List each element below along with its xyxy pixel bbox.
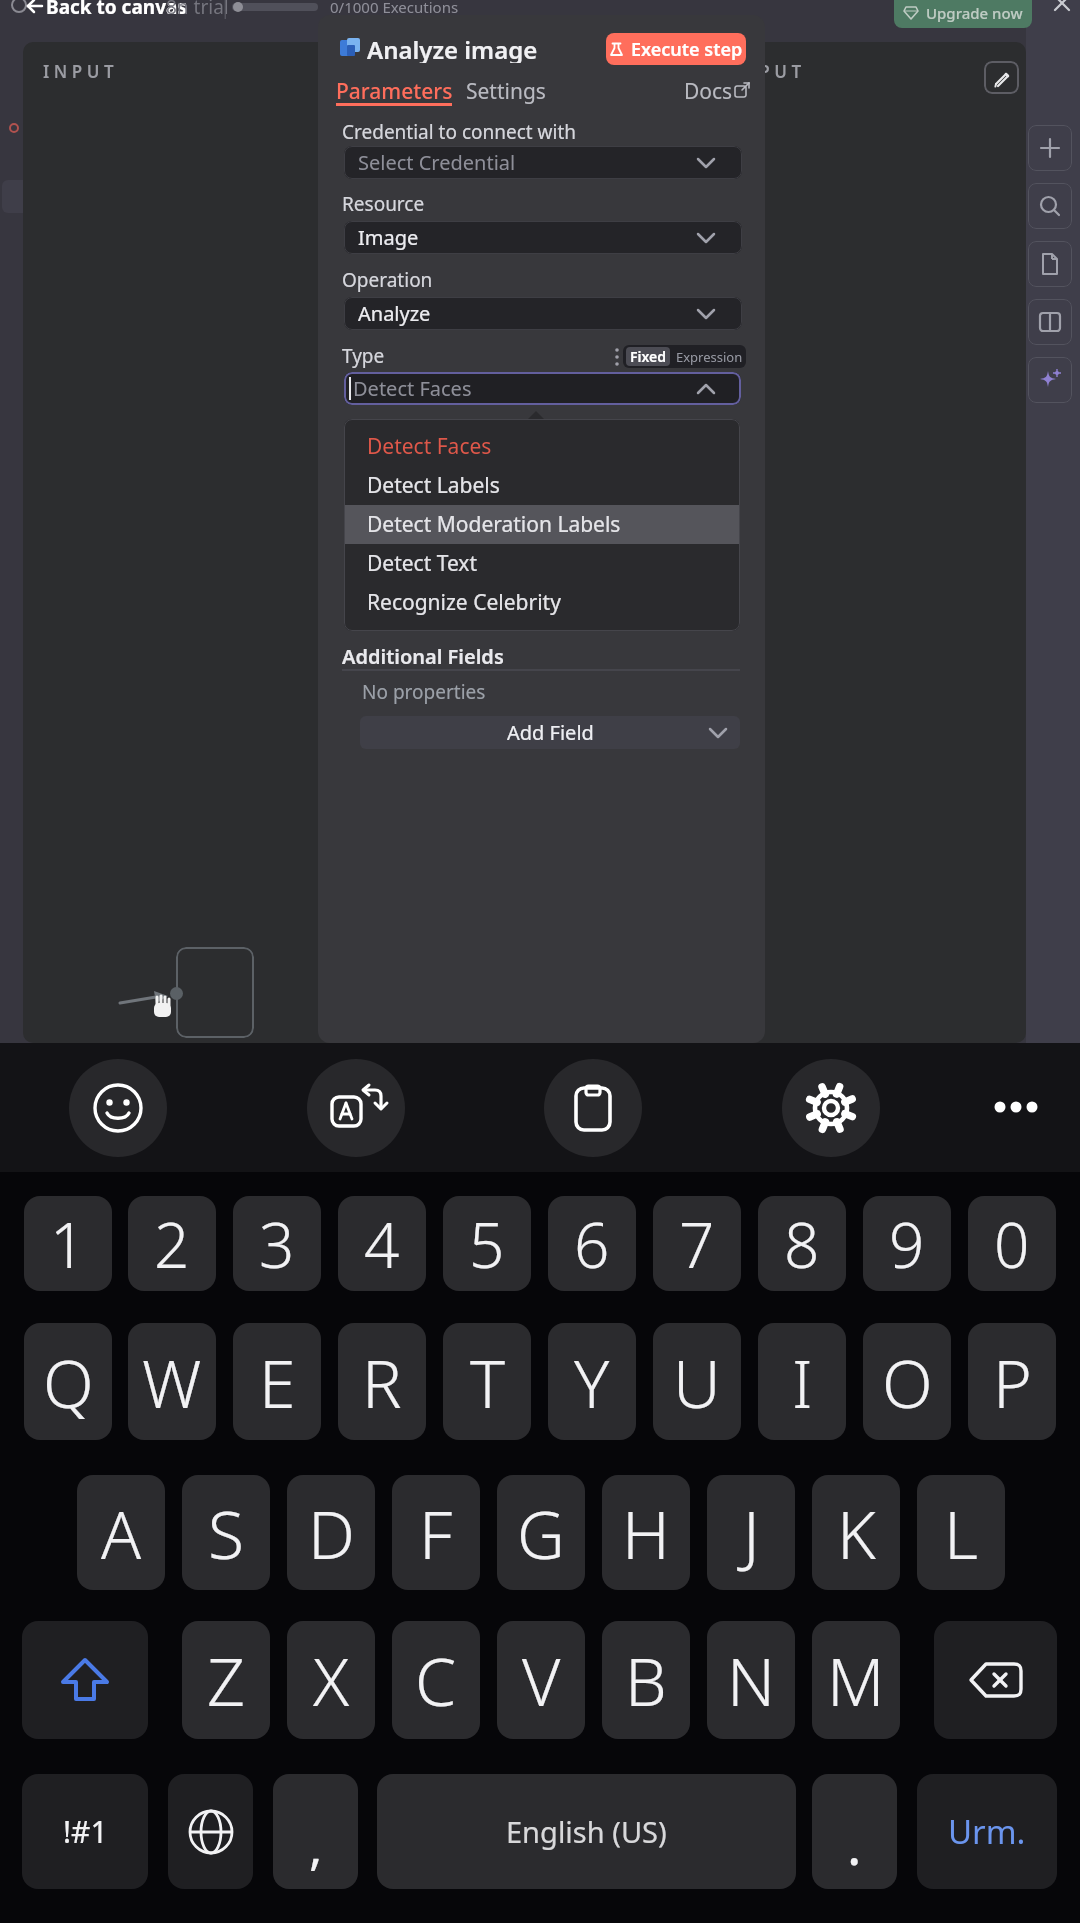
button[interactable]: Image (344, 221, 742, 254)
button[interactable]: P (968, 1323, 1056, 1440)
button[interactable] (1028, 357, 1072, 403)
button[interactable]: G (497, 1475, 585, 1590)
button[interactable]: B (602, 1621, 690, 1739)
button[interactable] (1052, 0, 1074, 12)
button[interactable]: K (812, 1475, 900, 1590)
button[interactable]: Urm. (917, 1774, 1057, 1889)
staticText: Recognize Celebrity (367, 588, 561, 616)
button[interactable] (1028, 125, 1072, 171)
button[interactable]: Execute step (606, 33, 746, 65)
button[interactable]: 6 (548, 1196, 636, 1291)
button[interactable]: I (758, 1323, 846, 1440)
button[interactable]: S (182, 1475, 270, 1590)
button[interactable]: X (287, 1621, 375, 1739)
staticText: Detect Labels (367, 471, 500, 499)
button[interactable]: , (273, 1774, 358, 1889)
staticText: Analyze image (367, 33, 538, 63)
staticText: Detect Faces (367, 432, 492, 460)
button[interactable] (993, 1100, 1039, 1114)
button[interactable]: Detect Labels (367, 471, 707, 499)
button[interactable] (69, 1059, 167, 1157)
button[interactable]: 1 (24, 1196, 112, 1291)
staticText: Select Credential (358, 149, 516, 176)
staticText: J (743, 1488, 760, 1578)
button[interactable]: Detect Faces (344, 372, 741, 405)
button[interactable]: N (707, 1621, 795, 1739)
staticText: Execute step (631, 37, 743, 62)
button[interactable]: Detect Moderation Labels (367, 510, 707, 538)
button[interactable]: Fixed (626, 347, 670, 366)
button[interactable]: J (707, 1475, 795, 1590)
button[interactable]: Detect Text (367, 549, 707, 577)
button[interactable]: Analyze (344, 297, 742, 330)
button[interactable]: 4 (338, 1196, 426, 1291)
button[interactable]: 0 (968, 1196, 1056, 1291)
button[interactable]: O (863, 1323, 951, 1440)
button[interactable]: 2 (128, 1196, 216, 1291)
button[interactable]: Expression (672, 347, 746, 366)
staticText: Docs (684, 77, 733, 105)
staticText: T (470, 1337, 505, 1427)
button[interactable] (623, 345, 746, 368)
button[interactable]: D (287, 1475, 375, 1590)
button[interactable] (1028, 241, 1072, 287)
button[interactable]: Z (182, 1621, 270, 1739)
button[interactable]: 9 (863, 1196, 951, 1291)
staticText: 3 (259, 1202, 295, 1286)
button[interactable]: Back to canvas (46, 0, 286, 21)
staticText: 0/1000 Executions (330, 0, 459, 17)
staticText: 9 (889, 1202, 925, 1286)
button[interactable] (544, 1059, 642, 1157)
staticText: D (308, 1488, 355, 1578)
staticText: E (259, 1337, 296, 1427)
button[interactable]: A (77, 1475, 165, 1590)
button[interactable]: M (812, 1621, 900, 1739)
button[interactable]: Y (548, 1323, 636, 1440)
button[interactable] (984, 61, 1019, 94)
button[interactable] (22, 1621, 148, 1739)
staticText: Urm. (948, 1809, 1026, 1854)
button[interactable]: 3 (233, 1196, 321, 1291)
button[interactable]: Q (24, 1323, 112, 1440)
button[interactable]: Upgrade now (894, 0, 1032, 28)
button[interactable]: E (233, 1323, 321, 1440)
button[interactable] (307, 1059, 405, 1157)
button[interactable]: T (443, 1323, 531, 1440)
button[interactable] (1028, 183, 1072, 229)
button[interactable]: Settings (466, 77, 556, 105)
staticText: INPUT (43, 60, 119, 82)
button[interactable]: Add Field (360, 716, 740, 749)
button[interactable]: Detect Faces (367, 432, 707, 460)
button[interactable]: W (128, 1323, 216, 1440)
staticText: Y (574, 1337, 610, 1427)
button[interactable]: . (812, 1774, 897, 1889)
staticText: U (673, 1337, 721, 1427)
button[interactable]: English (US) (377, 1774, 796, 1889)
button[interactable] (934, 1621, 1057, 1739)
button[interactable]: Parameters (336, 77, 471, 105)
button[interactable]: Recognize Celebrity (367, 588, 707, 616)
staticText: Detect Moderation Labels (367, 510, 621, 538)
button[interactable]: V (497, 1621, 585, 1739)
button[interactable] (1028, 299, 1072, 345)
staticText: | (220, 0, 231, 20)
button[interactable]: F (392, 1475, 480, 1590)
staticText: W (142, 1337, 202, 1427)
button[interactable]: U (653, 1323, 741, 1440)
button[interactable]: Docs (684, 77, 744, 105)
staticText: Additional Fields (342, 643, 504, 669)
button[interactable] (168, 1774, 253, 1889)
staticText: V (522, 1635, 561, 1725)
button[interactable]: L (917, 1475, 1005, 1590)
staticText: !#1 (63, 1811, 108, 1852)
button[interactable]: H (602, 1475, 690, 1590)
button[interactable]: C (392, 1621, 480, 1739)
button[interactable]: 8 (758, 1196, 846, 1291)
button[interactable]: !#1 (22, 1774, 148, 1889)
button[interactable]: 7 (653, 1196, 741, 1291)
staticText: 0 (994, 1202, 1030, 1286)
button[interactable] (782, 1059, 880, 1157)
button[interactable]: R (338, 1323, 426, 1440)
button[interactable]: Select Credential (344, 146, 742, 179)
button[interactable]: 5 (443, 1196, 531, 1291)
